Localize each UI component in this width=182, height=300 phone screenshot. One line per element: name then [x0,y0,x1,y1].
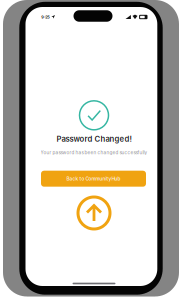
button[interactable]: Scroll to top [78,197,110,229]
button[interactable]: Back to CommunityHub [41,171,146,187]
staticText: Back to CommunityHub [66,176,120,181]
staticText: 9:25 [41,15,50,19]
staticText: Your password has been changed successfu… [40,150,147,155]
staticText: Password Changed! [56,134,131,144]
